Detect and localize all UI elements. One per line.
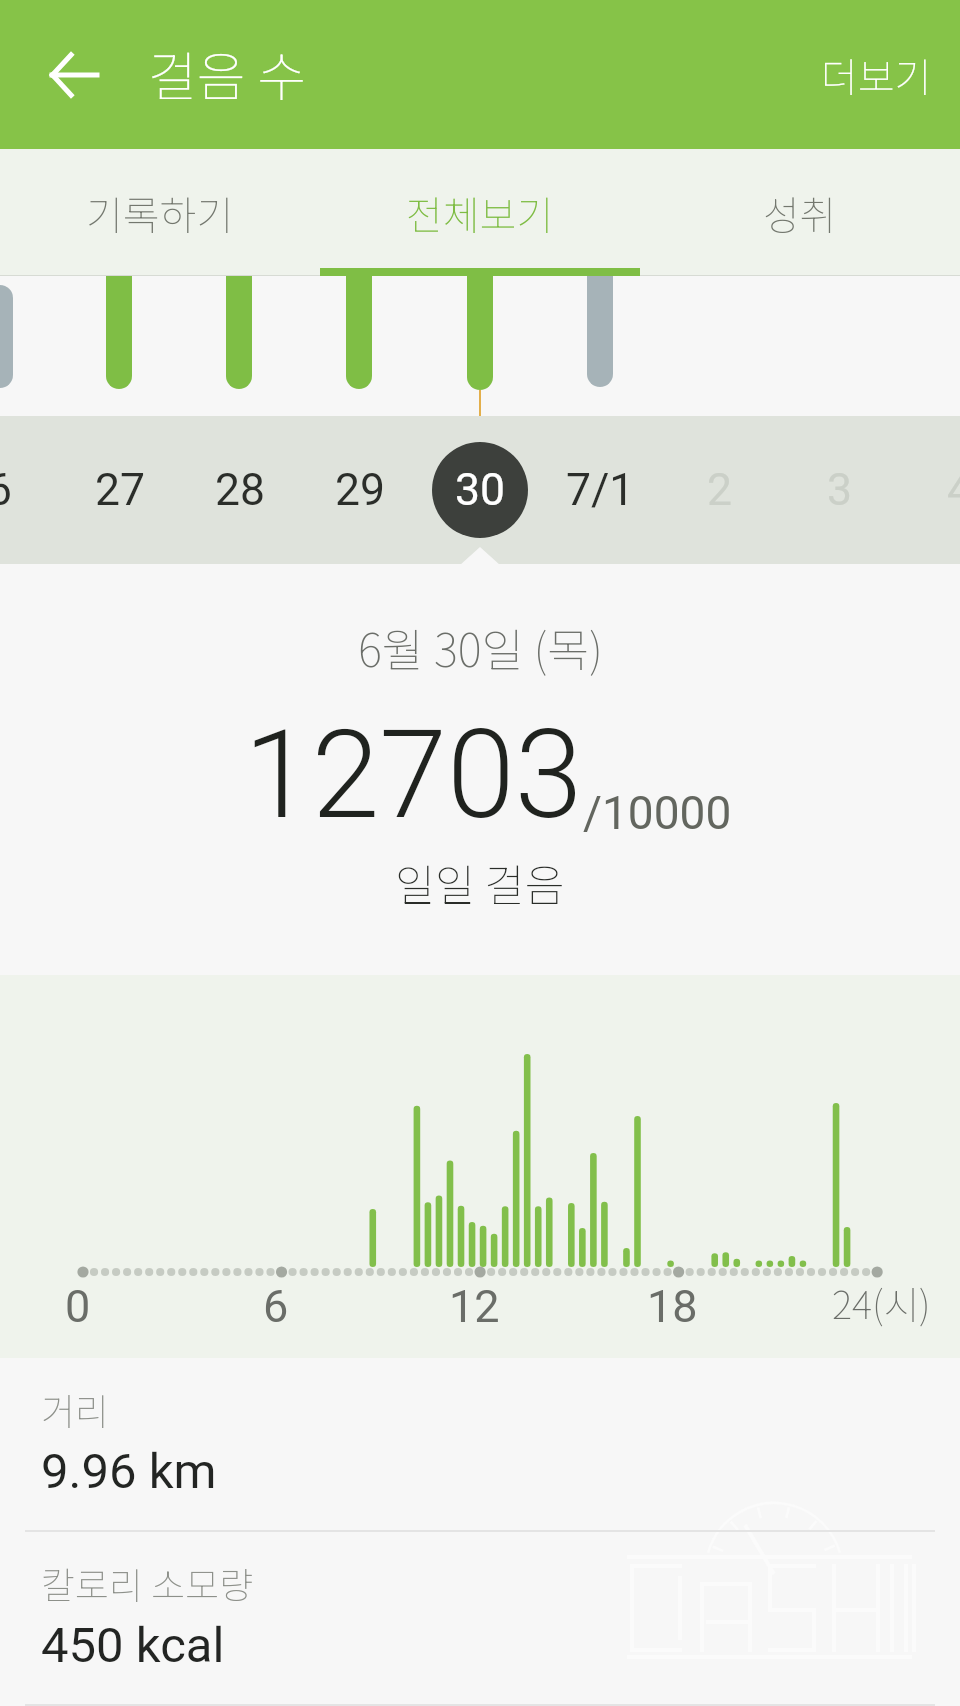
button[interactable]: 30: [420, 430, 540, 550]
button[interactable]: 성취: [640, 149, 960, 276]
staticText: 450 kcal: [41, 1617, 225, 1674]
staticText: 12: [449, 1280, 500, 1333]
staticText: 기록하기: [86, 184, 234, 242]
button[interactable]: 거리: [0, 1358, 960, 1530]
staticText: 0: [65, 1280, 91, 1333]
staticText: 7/1: [566, 464, 635, 516]
button[interactable]: 더보기: [795, 24, 958, 126]
staticText: 18: [647, 1280, 698, 1333]
staticText: 2: [707, 464, 733, 516]
staticText: 6월 30일 (목): [358, 614, 603, 680]
button[interactable]: 기록하기: [0, 149, 320, 276]
staticText: 12703: [244, 704, 583, 847]
staticText: 27: [95, 464, 146, 516]
staticText: 30: [455, 464, 506, 516]
staticText: 3: [827, 464, 853, 516]
staticText: 일일 걸음: [395, 851, 565, 914]
staticText: 24(시): [832, 1274, 931, 1330]
staticText: 6: [263, 1280, 289, 1333]
button[interactable]: 전체보기: [320, 149, 640, 276]
staticText: 거리: [41, 1382, 110, 1436]
staticText: 더보기: [821, 46, 932, 104]
button[interactable]: 28: [180, 430, 300, 550]
button[interactable]: 7/1: [540, 430, 660, 550]
staticText: /10000: [583, 786, 732, 840]
staticText: 6: [0, 464, 13, 516]
staticText: 4: [947, 464, 960, 516]
staticText: 칼로리 소모량: [41, 1556, 254, 1610]
button[interactable]: 6: [0, 430, 60, 550]
button[interactable]: 29: [300, 430, 420, 550]
button[interactable]: Back: [27, 28, 121, 122]
staticText: 29: [335, 464, 386, 516]
staticText: 28: [215, 464, 266, 516]
staticText: 9.96 km: [41, 1443, 217, 1500]
staticText: 걸음 수: [148, 35, 306, 112]
staticText: 성취: [763, 184, 837, 242]
staticText: 전체보기: [406, 184, 554, 242]
button[interactable]: 칼로리 소모량: [0, 1532, 960, 1704]
button[interactable]: 27: [60, 430, 180, 550]
